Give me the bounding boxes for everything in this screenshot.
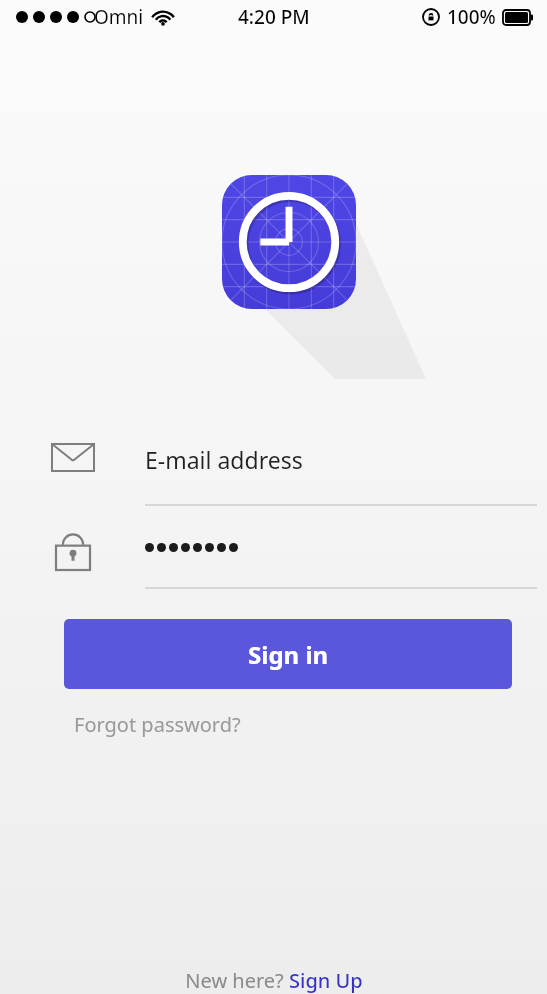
- staticText: New here? Sign Up: [185, 967, 363, 994]
- staticText: Sign in: [248, 638, 329, 671]
- button[interactable]: Forgot password?: [74, 707, 241, 742]
- staticText: 4:20 PM: [238, 4, 310, 30]
- button[interactable]: E-mail address: [0, 432, 547, 504]
- staticText: 100%: [447, 4, 496, 30]
- staticText: E-mail address: [145, 444, 303, 475]
- staticText: Omni: [94, 4, 144, 30]
- button[interactable]: Sign in: [64, 619, 512, 689]
- staticText: Forgot password?: [74, 711, 241, 738]
- button[interactable]: New here? Sign Up: [0, 967, 547, 994]
- button[interactable]: [0, 525, 547, 587]
